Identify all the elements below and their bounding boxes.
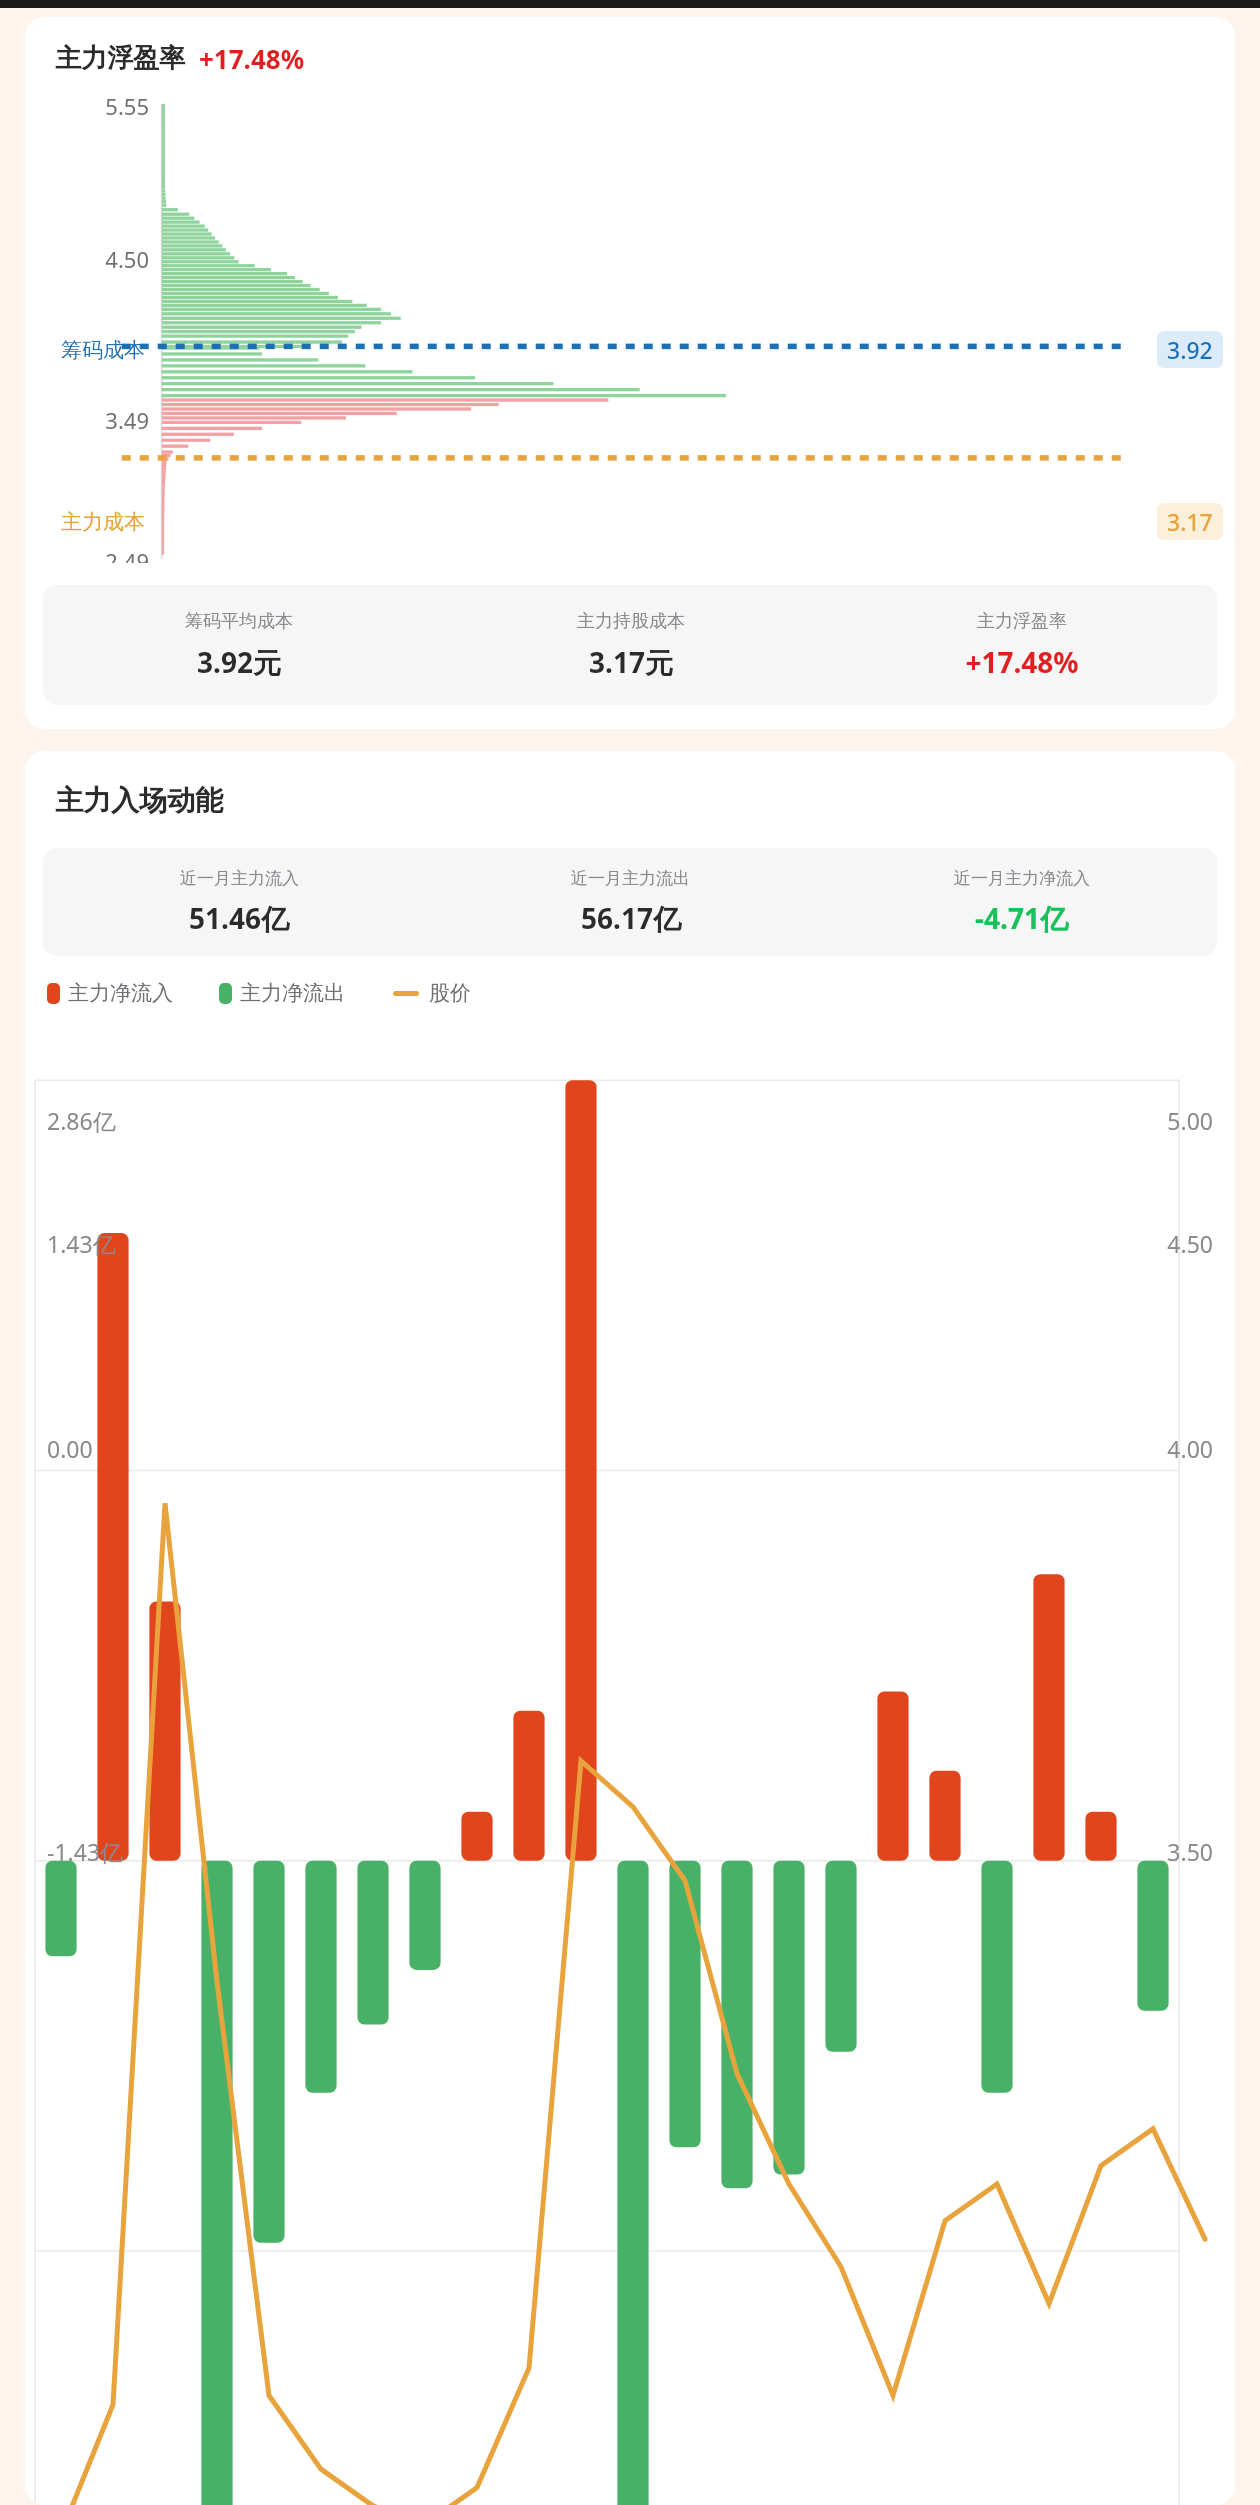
staticText: 近一月主力流入 [180, 868, 299, 889]
button[interactable]: 近一月主力流入 [43, 848, 1217, 956]
staticText: 3.49 [25, 405, 149, 435]
staticText: 0.00 [47, 1433, 1235, 1464]
staticText: 筹码平均成本 [185, 610, 293, 633]
staticText: 3.17 [1167, 506, 1213, 537]
staticText: 5.55 [25, 91, 149, 121]
staticText: 2.49 [25, 546, 149, 563]
staticText: 4.50 [25, 1228, 1213, 1259]
staticText: +17.48% [965, 643, 1079, 681]
staticText: +17.48% [199, 41, 305, 76]
button[interactable]: 主力浮盈率 [826, 585, 1217, 705]
staticText: 56.17亿 [581, 899, 681, 937]
staticText: 主力成本 [25, 509, 145, 535]
staticText: 3.17元 [589, 643, 673, 681]
button[interactable]: 主力入场动能 [25, 751, 1235, 2505]
button[interactable]: 近一月主力流入 [43, 848, 435, 956]
staticText: 筹码成本 [25, 337, 145, 363]
staticText: -4.71亿 [975, 899, 1068, 937]
staticText: -1.43亿 [47, 1836, 1235, 1867]
staticText: 3.50 [25, 1836, 1213, 1867]
button[interactable]: 筹码平均成本 [43, 585, 435, 705]
staticText: 主力持股成本 [577, 610, 685, 633]
staticText: 3.92元 [197, 643, 281, 681]
staticText: 主力净流出 [240, 980, 345, 1006]
staticText: 主力浮盈率 [977, 610, 1067, 633]
staticText: 3.92 [1167, 334, 1213, 365]
button[interactable]: 近一月主力流出 [435, 848, 826, 956]
staticText: 近一月主力净流入 [954, 868, 1090, 889]
staticText: 5.00 [25, 1105, 1213, 1136]
button[interactable]: 近一月主力净流入 [826, 848, 1217, 956]
button[interactable]: 股价 [393, 980, 471, 1006]
staticText: 4.00 [25, 1433, 1213, 1464]
staticText: 主力入场动能 [55, 783, 223, 818]
button[interactable]: 主力浮盈率 [25, 17, 1235, 729]
staticText: 51.46亿 [189, 899, 289, 937]
button[interactable]: 主力持股成本 [435, 585, 826, 705]
staticText: 股价 [429, 980, 471, 1006]
staticText: 1.43亿 [47, 1228, 1235, 1259]
button[interactable]: 主力净流出 [219, 980, 345, 1006]
button[interactable]: 主力净流入 [47, 980, 173, 1006]
staticText: 主力浮盈率 [55, 42, 185, 75]
button[interactable]: 筹码平均成本 [43, 585, 1217, 705]
staticText: 2.86亿 [47, 1105, 1235, 1136]
staticText: 近一月主力流出 [571, 868, 690, 889]
staticText: 主力净流入 [68, 980, 173, 1006]
staticText: 4.50 [25, 244, 149, 274]
